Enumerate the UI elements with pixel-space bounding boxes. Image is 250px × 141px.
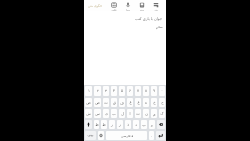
staticText: ق bbox=[113, 101, 116, 105]
staticText: پ bbox=[142, 123, 146, 127]
staticText: ط bbox=[102, 123, 106, 127]
staticText: و bbox=[151, 123, 153, 127]
staticText: س bbox=[95, 112, 100, 116]
staticText: جوان با یاری کتب bbox=[135, 16, 163, 21]
staticText: الگوی متن bbox=[88, 4, 102, 8]
staticText: ص bbox=[95, 101, 100, 105]
staticText: سند bbox=[140, 9, 144, 11]
button[interactable] bbox=[157, 120, 165, 129]
button[interactable]: ۹ bbox=[151, 86, 157, 96]
button[interactable]: ی bbox=[103, 109, 109, 118]
button[interactable]: . bbox=[149, 131, 154, 140]
staticText: ۰ bbox=[161, 89, 163, 93]
button[interactable]: ک bbox=[159, 109, 165, 118]
staticText: ض bbox=[86, 101, 91, 105]
button[interactable]: ع bbox=[135, 98, 141, 107]
button[interactable]: ز bbox=[109, 120, 115, 129]
staticText: ؟۱۲۳ bbox=[87, 134, 94, 137]
button[interactable]: ؟۱۲۳ bbox=[85, 131, 96, 140]
button[interactable]: غ bbox=[127, 98, 133, 107]
button[interactable]: ذ bbox=[125, 120, 131, 129]
button[interactable]: ۸ bbox=[143, 86, 149, 96]
staticText: ۷ bbox=[137, 89, 139, 93]
staticText: ک bbox=[160, 112, 164, 116]
staticText: ا bbox=[129, 112, 131, 116]
staticText: ب bbox=[112, 112, 116, 116]
button[interactable]: ۳ bbox=[103, 86, 109, 96]
staticText: . bbox=[151, 133, 152, 138]
button[interactable]: ش bbox=[85, 109, 92, 118]
staticText: ز bbox=[111, 123, 113, 127]
button[interactable]: Camera bbox=[107, 0, 121, 11]
button[interactable]: ض bbox=[85, 98, 92, 107]
button[interactable]: List bbox=[149, 0, 163, 11]
staticText: ع bbox=[137, 101, 140, 105]
button[interactable]: ه bbox=[143, 98, 149, 107]
button[interactable]: خ bbox=[151, 98, 157, 107]
staticText: ۳ bbox=[105, 89, 107, 93]
button[interactable]: ۴ bbox=[111, 86, 117, 96]
button[interactable]: ص bbox=[94, 98, 101, 107]
staticText: عکس bbox=[111, 9, 117, 11]
button[interactable]: Microphone bbox=[121, 0, 135, 11]
button[interactable]: ۵ bbox=[119, 86, 125, 96]
staticText: ۴ bbox=[113, 89, 115, 93]
staticText: ۱ bbox=[88, 89, 90, 93]
staticText: ه bbox=[145, 101, 147, 105]
button[interactable]: پ bbox=[141, 120, 147, 129]
staticText: سلام bbox=[156, 25, 163, 29]
staticText: ذ bbox=[127, 123, 129, 127]
staticText: ن bbox=[145, 112, 148, 116]
staticText: ش bbox=[86, 112, 91, 116]
staticText: ۶ bbox=[129, 89, 131, 93]
button[interactable]: ر bbox=[117, 120, 123, 129]
staticText: ت bbox=[136, 112, 140, 116]
staticText: ی bbox=[105, 112, 108, 116]
button[interactable]: Save bbox=[135, 0, 149, 11]
button[interactable]: ل bbox=[119, 109, 125, 118]
staticText: ظ bbox=[95, 123, 99, 127]
button[interactable]: ۷ bbox=[135, 86, 141, 96]
button[interactable] bbox=[98, 131, 104, 140]
button[interactable]: فارسی ◂ bbox=[106, 131, 147, 140]
staticText: ر bbox=[119, 123, 121, 127]
button[interactable]: ت bbox=[135, 109, 141, 118]
button[interactable] bbox=[156, 131, 165, 140]
staticText: ۹ bbox=[153, 89, 155, 93]
button[interactable]: ظ bbox=[94, 120, 99, 129]
button[interactable]: ۱ bbox=[85, 86, 92, 96]
staticText: ف bbox=[120, 101, 124, 105]
button[interactable]: ب bbox=[111, 109, 117, 118]
button[interactable]: و bbox=[149, 120, 155, 129]
staticText: ۸ bbox=[145, 89, 147, 93]
staticText: خ bbox=[153, 101, 156, 105]
button[interactable]: ح bbox=[159, 98, 165, 107]
button[interactable]: ۶ bbox=[127, 86, 133, 96]
button[interactable]: ط bbox=[101, 120, 107, 129]
button[interactable]: ۰ bbox=[159, 86, 165, 96]
staticText: غ bbox=[129, 101, 132, 105]
button[interactable]: ن bbox=[143, 109, 149, 118]
button[interactable]: م bbox=[151, 109, 157, 118]
button[interactable]: ف bbox=[119, 98, 125, 107]
staticText: م bbox=[153, 112, 156, 116]
staticText: ۵ bbox=[121, 89, 123, 93]
staticText: د bbox=[135, 123, 137, 127]
button[interactable]: د bbox=[133, 120, 139, 129]
staticText: ل bbox=[121, 112, 124, 116]
staticText: متن bbox=[154, 9, 158, 11]
staticText: ح bbox=[161, 101, 164, 105]
staticText: ۲ bbox=[97, 89, 99, 93]
staticText: صدا bbox=[126, 9, 130, 11]
button[interactable]: ۲ bbox=[94, 86, 101, 96]
staticText: ث bbox=[104, 101, 108, 105]
staticText: فارسی ◂ bbox=[121, 134, 133, 138]
button[interactable] bbox=[85, 120, 92, 129]
button[interactable]: ا bbox=[127, 109, 133, 118]
button[interactable]: ق bbox=[111, 98, 117, 107]
button[interactable]: س bbox=[94, 109, 101, 118]
button[interactable]: ث bbox=[103, 98, 109, 107]
